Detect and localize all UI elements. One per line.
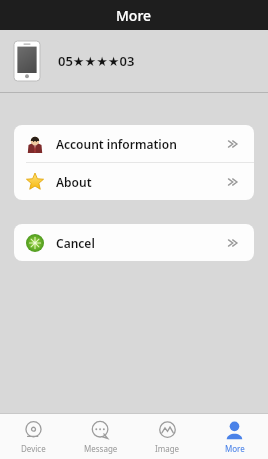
button[interactable]: 05★★★★03	[0, 30, 268, 92]
staticText: Device	[21, 443, 46, 454]
staticText: About	[56, 174, 92, 190]
button[interactable]: Account information	[14, 125, 254, 162]
button[interactable]: Image	[134, 414, 201, 459]
staticText: Image	[155, 443, 180, 454]
staticText: More	[225, 443, 245, 454]
staticText: 05★★★★03	[58, 52, 135, 70]
staticText: Cancel	[56, 235, 95, 251]
button[interactable]: Cancel	[14, 224, 254, 261]
staticText: Message	[84, 443, 118, 454]
button[interactable]: Message	[67, 414, 134, 459]
button[interactable]: About	[14, 163, 254, 200]
staticText: More	[116, 6, 152, 25]
staticText: Account information	[56, 136, 177, 152]
button[interactable]: Device	[0, 414, 67, 459]
button[interactable]: More	[201, 414, 268, 459]
